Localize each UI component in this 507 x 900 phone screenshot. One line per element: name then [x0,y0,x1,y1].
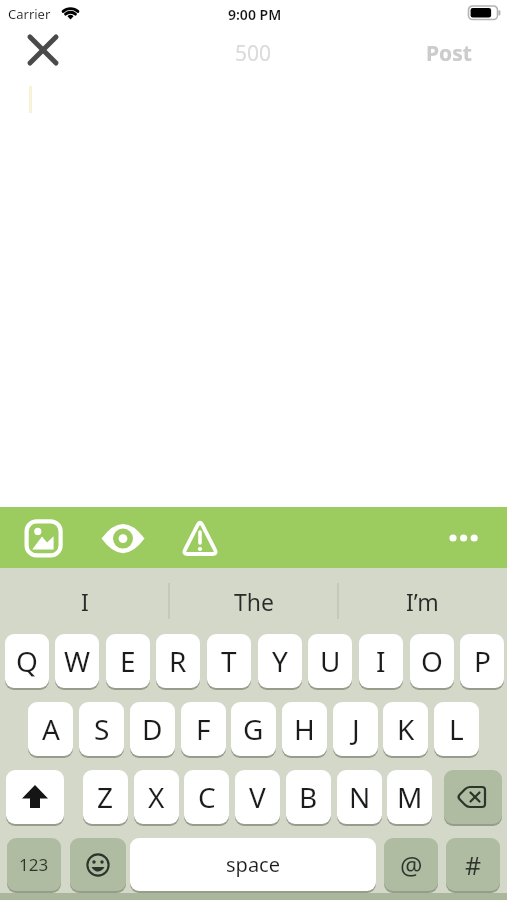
staticText: R [169,642,187,680]
button[interactable]: J [333,702,378,756]
staticText: E [120,642,136,680]
button[interactable]: P [460,634,504,688]
button[interactable] [444,770,502,824]
staticText: S [94,710,110,748]
staticText: T [221,642,237,680]
staticText: I [376,642,386,680]
button[interactable]: S [79,702,124,756]
button[interactable] [22,517,66,560]
button[interactable]: I [0,585,169,617]
button[interactable]: L [434,702,479,756]
button[interactable]: N [337,770,382,824]
button[interactable]: Z [83,770,128,824]
staticText: A [42,710,60,748]
button[interactable]: Y [258,634,302,688]
staticText: D [142,710,163,748]
button[interactable]: R [156,634,200,688]
staticText: G [243,710,264,748]
staticText: # [465,848,482,882]
button[interactable]: X [134,770,179,824]
button[interactable] [443,520,485,556]
staticText: Z [97,778,114,816]
button[interactable]: O [410,634,454,688]
button[interactable]: G [231,702,276,756]
staticText: space [226,851,280,878]
button[interactable]: V [235,770,280,824]
staticText: F [196,710,211,748]
button[interactable] [70,838,126,891]
staticText: Carrier [8,5,51,23]
button[interactable]: W [55,634,99,688]
staticText: The [234,586,274,617]
staticText: Post [426,39,472,65]
button[interactable]: H [282,702,327,756]
staticText: Y [272,642,288,680]
button[interactable]: B [286,770,331,824]
staticText: C [198,778,216,816]
staticText: P [474,642,491,680]
staticText: X [148,778,165,816]
button[interactable]: 123 [7,838,61,891]
button[interactable]: @ [384,838,438,891]
staticText: K [397,710,415,748]
staticText: H [294,710,315,748]
staticText: 500 [235,39,272,66]
button[interactable]: D [130,702,175,756]
button[interactable] [179,517,223,560]
staticText: @ [400,848,423,882]
staticText: U [320,642,341,680]
staticText: V [249,778,266,816]
staticText: Q [16,642,38,680]
staticText: O [421,642,443,680]
staticText: M [397,778,423,816]
button[interactable]: M [387,770,432,824]
button[interactable]: I [359,634,403,688]
button[interactable]: F [181,702,226,756]
button[interactable]: I’m [338,585,507,617]
staticText: I [81,586,89,617]
button[interactable]: Post [410,39,487,65]
button[interactable]: E [106,634,150,688]
staticText: B [299,778,318,816]
button[interactable]: space [130,838,376,891]
button[interactable]: U [308,634,352,688]
staticText: 9:00 PM [228,5,282,24]
button[interactable] [6,770,64,824]
button[interactable]: The [169,585,338,617]
button[interactable]: Q [5,634,49,688]
staticText: N [349,778,371,816]
button[interactable]: A [28,702,73,756]
staticText: W [64,642,91,680]
staticText: 123 [19,853,49,876]
button[interactable] [100,517,146,560]
staticText: I’m [406,586,439,617]
button[interactable]: T [207,634,251,688]
button[interactable]: C [184,770,229,824]
button[interactable]: # [446,838,500,891]
button[interactable]: K [383,702,428,756]
staticText: L [449,710,464,748]
staticText: J [352,710,360,748]
button[interactable] [24,32,62,68]
